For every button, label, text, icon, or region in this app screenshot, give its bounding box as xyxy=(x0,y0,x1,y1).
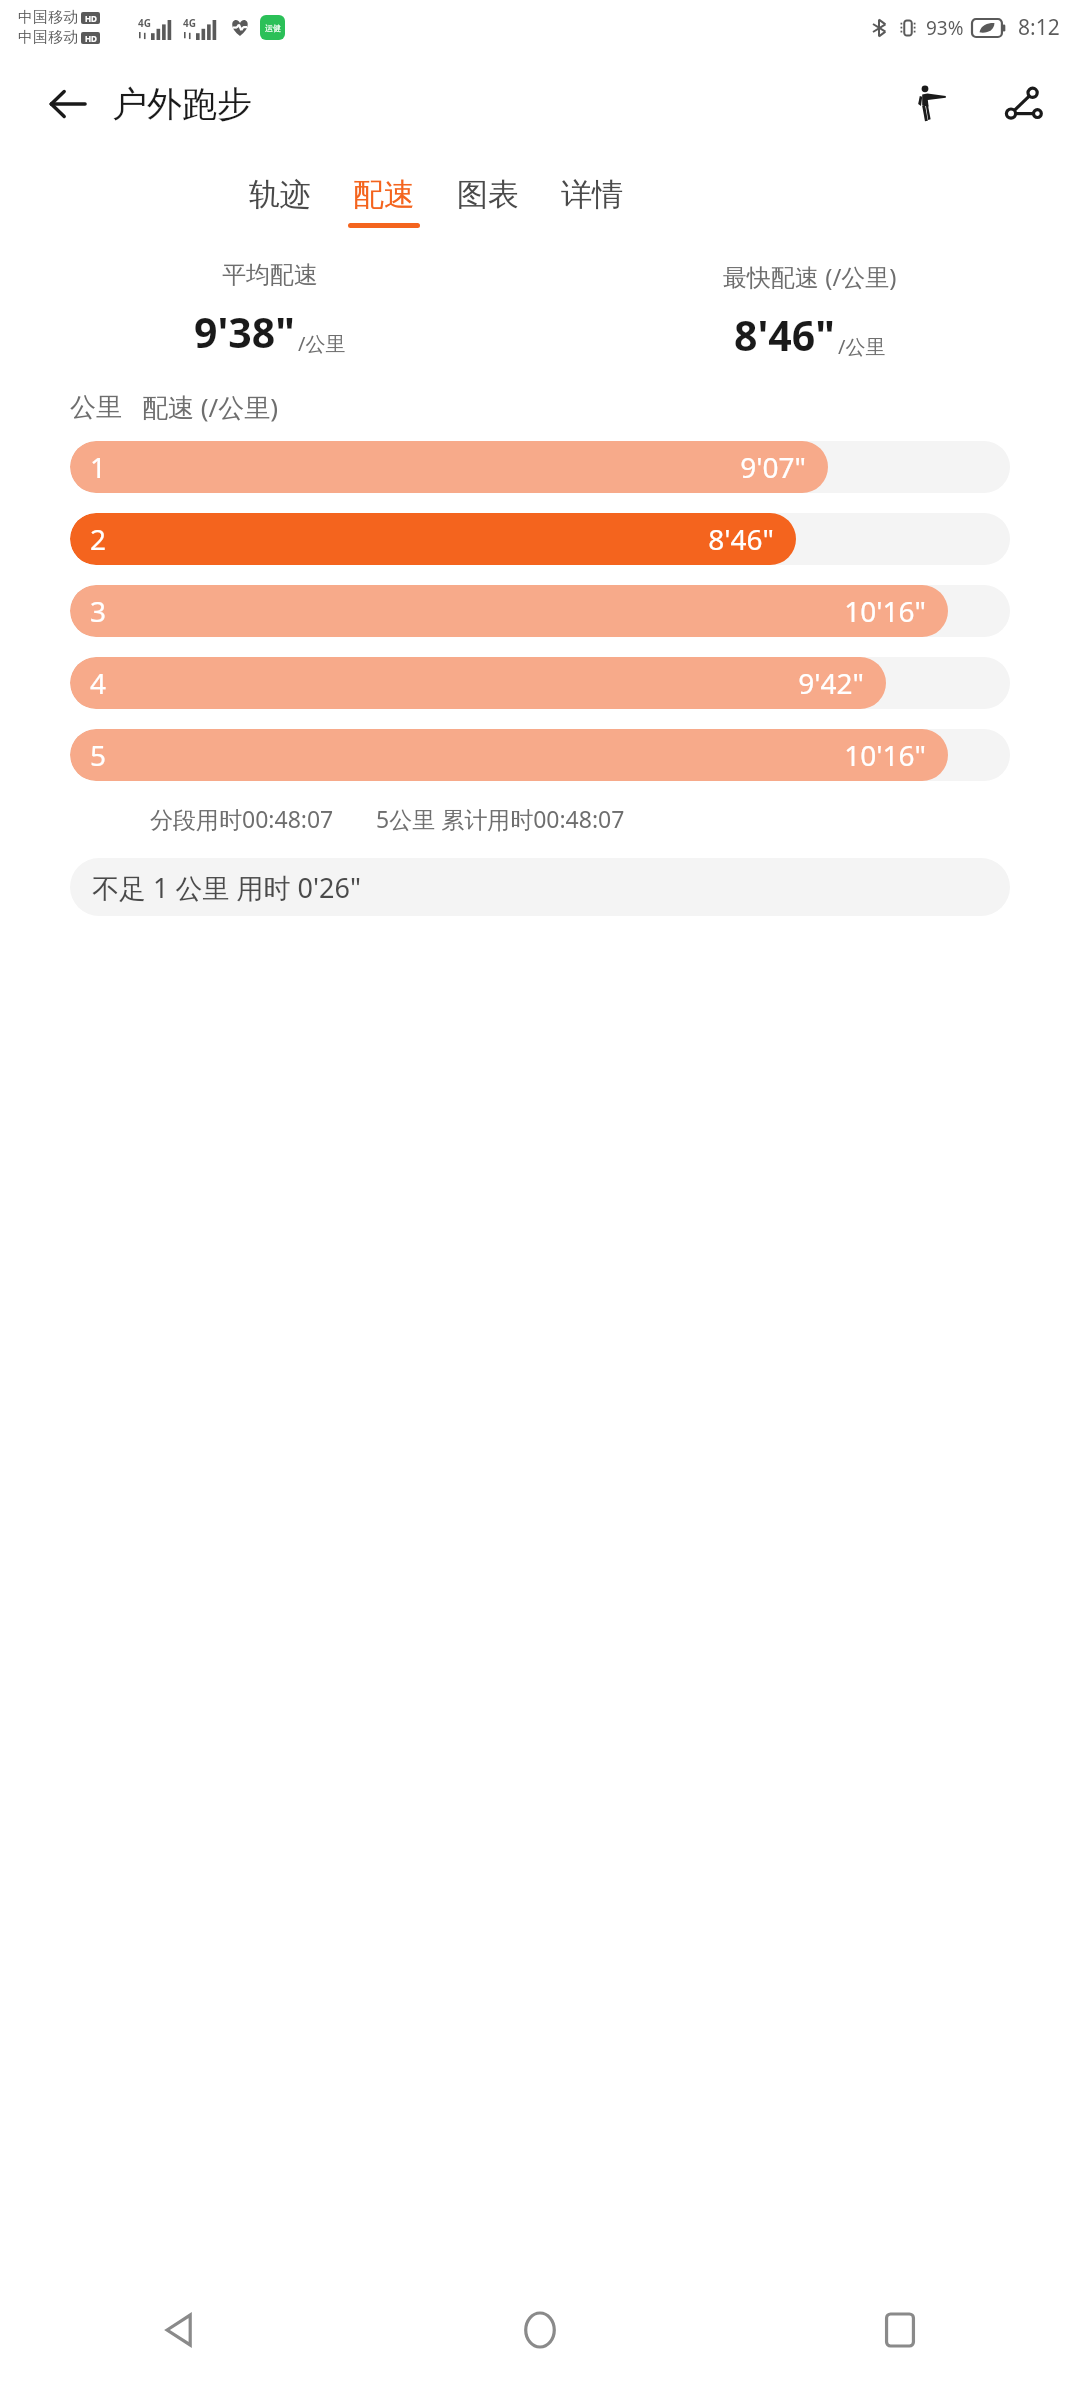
staticText: 配速 xyxy=(353,175,415,214)
staticText: 中国移动 xyxy=(18,28,78,47)
button[interactable]: 详情 xyxy=(540,171,644,232)
button[interactable]: 5 xyxy=(70,729,1010,781)
staticText: 9'07" xyxy=(740,448,806,486)
button[interactable]: 分享 xyxy=(992,73,1054,135)
staticText: 运健 xyxy=(265,23,281,33)
staticText: 8:12 xyxy=(1018,13,1060,42)
staticText: 最快配速 (/公里) xyxy=(723,260,897,293)
button[interactable]: 图表 xyxy=(436,171,540,232)
button[interactable]: 1 xyxy=(70,441,1010,493)
staticText: 分段用时00:48:07 xyxy=(150,803,334,834)
button[interactable]: 返回 xyxy=(38,74,98,134)
staticText: 公里 xyxy=(70,391,122,424)
staticText: /公里 xyxy=(298,330,346,357)
staticText: HD xyxy=(85,13,97,24)
button[interactable]: 主屏幕 xyxy=(360,2260,720,2400)
staticText: 5 xyxy=(90,736,107,774)
staticText: /公里 xyxy=(838,333,886,360)
staticText: 4 xyxy=(90,664,107,702)
staticText: 不足 1 公里 用时 0'26" xyxy=(92,869,361,906)
button[interactable]: 最近任务 xyxy=(720,2260,1080,2400)
staticText: 93% xyxy=(926,15,964,41)
staticText: 4G xyxy=(138,16,151,30)
staticText: 8'46" xyxy=(708,520,774,558)
staticText: 详情 xyxy=(561,175,623,214)
button[interactable]: 4 xyxy=(70,657,1010,709)
staticText: 配速 (/公里) xyxy=(142,389,279,425)
staticText: 轨迹 xyxy=(249,175,311,214)
button[interactable]: 不足 1 公里 用时 0'26" xyxy=(70,858,1010,916)
staticText: 图表 xyxy=(457,175,519,214)
staticText: 9'38" xyxy=(194,304,295,360)
button[interactable]: 2 xyxy=(70,513,1010,565)
staticText: 10'16" xyxy=(844,592,926,630)
staticText: 10'16" xyxy=(844,736,926,774)
staticText: 户外跑步 xyxy=(112,82,252,126)
staticText: HD xyxy=(85,33,97,44)
button[interactable]: 返回 xyxy=(0,2260,360,2400)
button[interactable]: 3 xyxy=(70,585,1010,637)
staticText: 中国移动 xyxy=(18,8,78,27)
staticText: 9'42" xyxy=(798,664,864,702)
staticText: 3 xyxy=(90,592,107,630)
staticText: 1 xyxy=(90,448,107,486)
staticText: 4G xyxy=(183,16,196,30)
staticText: 8'46" xyxy=(734,307,835,363)
button[interactable]: 轨迹 xyxy=(228,171,332,232)
button[interactable]: 运动记录 xyxy=(898,73,960,135)
button[interactable]: 配速 xyxy=(332,171,436,232)
staticText: 5公里 累计用时00:48:07 xyxy=(376,803,625,834)
staticText: 平均配速 xyxy=(222,260,318,290)
staticText: 2 xyxy=(90,520,107,558)
